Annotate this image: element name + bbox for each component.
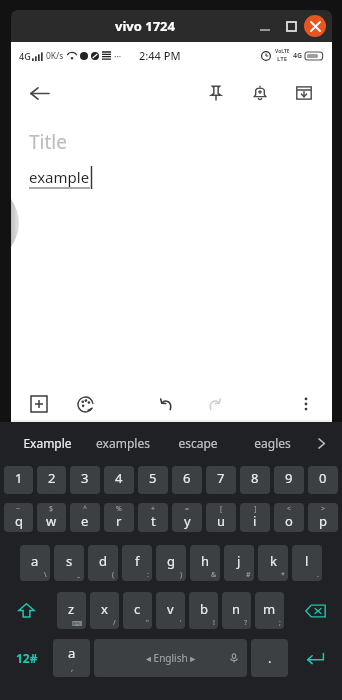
button[interactable]: d [88, 545, 118, 581]
button[interactable]: . [251, 639, 288, 677]
staticText: p [319, 512, 327, 530]
staticText: . [317, 570, 319, 580]
button[interactable]: s [54, 545, 84, 581]
button[interactable]: Add [23, 388, 55, 420]
button[interactable]: w [37, 503, 66, 532]
staticText: = [185, 504, 190, 514]
staticText: VoLTE [275, 48, 290, 55]
staticText: examples [96, 435, 150, 451]
button[interactable]: 5 [138, 466, 168, 494]
staticText: ' [180, 618, 182, 628]
button[interactable]: 7 [206, 466, 236, 494]
button[interactable]: 6 [172, 466, 202, 494]
button[interactable]: f [122, 545, 152, 581]
button[interactable]: Minimize [252, 13, 278, 39]
button[interactable]: 2 [37, 466, 66, 494]
staticText: h [201, 552, 210, 570]
button[interactable]: z [57, 592, 86, 629]
button[interactable]: n [222, 592, 251, 629]
button[interactable]: 9 [274, 466, 304, 494]
button[interactable]: Back [19, 73, 59, 113]
button[interactable]: examples [85, 422, 160, 464]
button[interactable]: Backspace [293, 592, 338, 629]
button[interactable]: 0 [308, 466, 338, 494]
button[interactable]: Example [10, 422, 85, 464]
staticText: ( [112, 570, 115, 580]
button[interactable]: Enter [290, 637, 340, 679]
staticText: ◂ English ▸ [146, 651, 196, 665]
staticText: n [232, 600, 241, 618]
button[interactable]: 12# [2, 637, 51, 679]
staticText: d [99, 552, 107, 570]
button[interactable]: r [104, 503, 134, 532]
button[interactable]: Pin [196, 73, 236, 113]
button[interactable]: h [190, 545, 220, 581]
staticText: \ [44, 570, 47, 580]
button[interactable]: escape [160, 422, 235, 464]
button[interactable]: q [4, 503, 33, 532]
staticText: ··· [114, 50, 122, 62]
staticText: f [135, 552, 140, 570]
button[interactable]: 4 [104, 466, 134, 494]
button[interactable]: More suggestions [310, 422, 332, 464]
button[interactable]: ◂ English ▸ [94, 639, 247, 677]
button[interactable]: More options [290, 388, 322, 420]
button[interactable]: t [138, 503, 168, 532]
staticText: 8 [251, 469, 259, 487]
staticText: vivo 1724 [115, 17, 175, 35]
button[interactable]: Close [304, 15, 326, 37]
button[interactable]: Undo [150, 388, 182, 420]
staticText: k [270, 552, 277, 570]
staticText: 0K/s [46, 50, 64, 62]
button[interactable]: a [20, 545, 50, 581]
staticText: & [211, 570, 217, 580]
staticText: # [246, 570, 251, 580]
button[interactable]: x [90, 592, 119, 629]
button[interactable]: Language [53, 639, 90, 677]
button[interactable]: Maximize [278, 13, 304, 39]
staticText: a [31, 552, 39, 570]
button[interactable]: g [156, 545, 186, 581]
staticText: escape [178, 435, 218, 451]
button[interactable]: v [156, 592, 185, 629]
staticText: ~ [16, 504, 21, 514]
staticText: g [167, 552, 175, 570]
staticText: _ [77, 570, 81, 580]
button[interactable]: b [189, 592, 218, 629]
button[interactable]: m [255, 592, 284, 629]
staticText: * [281, 570, 285, 580]
button[interactable]: y [172, 503, 202, 532]
button[interactable]: j [224, 545, 254, 581]
staticText: 9 [285, 469, 293, 487]
staticText: , [71, 662, 74, 673]
staticText: e [81, 512, 89, 530]
button[interactable]: Shift [4, 592, 48, 629]
staticText: 12# [16, 650, 38, 666]
button[interactable]: Color palette [69, 388, 101, 420]
staticText: 4G [19, 50, 31, 62]
button[interactable]: Redo [198, 388, 230, 420]
button[interactable]: 1 [4, 466, 33, 494]
button[interactable]: u [206, 503, 236, 532]
button[interactable]: l [292, 545, 322, 581]
button[interactable]: e [70, 503, 100, 532]
staticText: 4 [115, 469, 123, 487]
staticText: 6 [183, 469, 191, 487]
button[interactable]: Archive [284, 73, 324, 113]
button[interactable]: p [308, 503, 338, 532]
button[interactable]: o [274, 503, 304, 532]
staticText: 3 [81, 469, 89, 487]
button[interactable]: c [123, 592, 152, 629]
button[interactable]: i [240, 503, 270, 532]
button[interactable]: 8 [240, 466, 270, 494]
staticText: 5 [149, 469, 157, 487]
button[interactable]: Reminder [240, 73, 280, 113]
button[interactable]: 3 [70, 466, 100, 494]
staticText: a [68, 644, 76, 662]
staticText: + [151, 504, 156, 514]
button[interactable]: k [258, 545, 288, 581]
staticText: u [217, 512, 226, 530]
staticText: " [146, 618, 149, 628]
button[interactable]: eagles [235, 422, 310, 464]
staticText: w [46, 512, 57, 530]
